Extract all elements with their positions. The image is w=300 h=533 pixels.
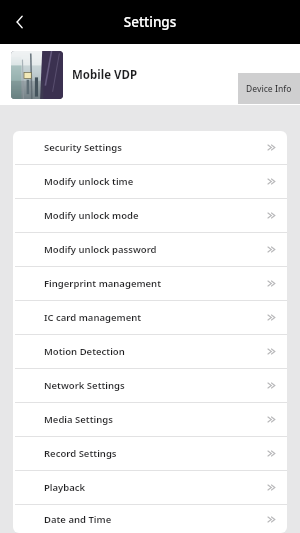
staticText: IC card management: [44, 311, 256, 324]
staticText: Modify unlock mode: [44, 209, 256, 222]
button[interactable]: Modify unlock password: [13, 233, 287, 266]
button[interactable]: Date and Time: [13, 505, 287, 533]
staticText: Modify unlock time: [44, 175, 256, 188]
staticText: Modify unlock password: [44, 243, 256, 256]
staticText: Playback: [44, 481, 256, 494]
button[interactable]: Device Info: [238, 73, 300, 104]
staticText: Motion Detection: [44, 345, 256, 358]
button[interactable]: Playback: [13, 471, 287, 504]
button[interactable]: Motion Detection: [13, 335, 287, 368]
button[interactable]: Modify unlock time: [13, 165, 287, 198]
button[interactable]: Modify unlock mode: [13, 199, 287, 232]
button[interactable]: Back: [0, 2, 40, 42]
staticText: Record Settings: [44, 447, 256, 460]
button[interactable]: Network Settings: [13, 369, 287, 402]
staticText: Mobile VDP: [72, 67, 138, 83]
staticText: Date and Time: [44, 513, 256, 526]
button[interactable]: Media Settings: [13, 403, 287, 436]
staticText: Device Info: [246, 83, 292, 95]
button[interactable]: IC card management: [13, 301, 287, 334]
button[interactable]: Security Settings: [13, 131, 287, 164]
button[interactable]: Fingerprint management: [13, 267, 287, 300]
button[interactable]: Record Settings: [13, 437, 287, 470]
staticText: Security Settings: [44, 141, 256, 154]
staticText: Settings: [0, 13, 300, 31]
staticText: Media Settings: [44, 413, 256, 426]
button[interactable]: Mobile VDP: [0, 44, 300, 105]
staticText: Fingerprint management: [44, 277, 256, 290]
staticText: Network Settings: [44, 379, 256, 392]
